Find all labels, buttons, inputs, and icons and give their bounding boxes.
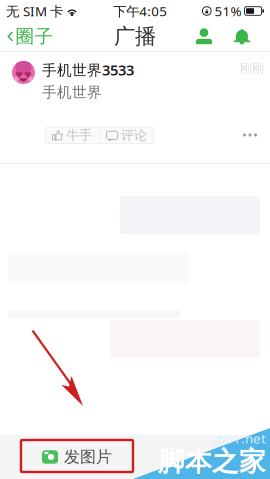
button[interactable]: 发图片 <box>0 435 270 479</box>
staticText: 圈子 <box>16 25 54 48</box>
button[interactable]: 牛手 <box>45 127 99 143</box>
staticText: 评论 <box>121 127 147 143</box>
staticText: 脚本之家 <box>158 445 266 478</box>
button[interactable]: 圈子 <box>0 21 64 52</box>
button[interactable]: Notifications <box>224 21 260 52</box>
staticText: 51% <box>215 2 242 20</box>
staticText: 刚刚 <box>240 61 264 76</box>
button[interactable]: Members <box>186 21 222 52</box>
button[interactable]: 评论 <box>100 127 154 143</box>
staticText: 手机世界3533 <box>42 60 134 79</box>
staticText: 手机世界 <box>42 83 102 101</box>
staticText: 广播 <box>114 23 156 50</box>
staticText: 无 SIM 卡 <box>6 2 63 20</box>
button[interactable]: More options <box>237 126 263 144</box>
staticText: jb51.net <box>214 429 266 447</box>
staticText: 牛手 <box>66 127 92 143</box>
staticText: 下午4:05 <box>113 2 167 20</box>
staticText: 发图片 <box>64 447 112 467</box>
